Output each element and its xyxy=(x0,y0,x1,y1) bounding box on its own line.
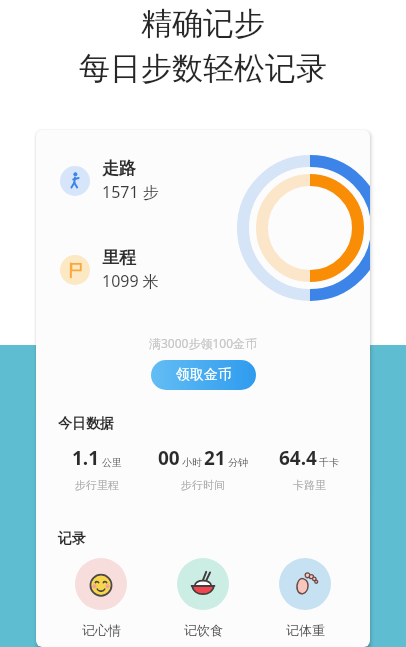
staticText: 1.1 xyxy=(72,445,100,471)
staticText: 今日数据 xyxy=(58,415,114,433)
staticText: 步行里程 xyxy=(75,478,119,492)
staticText: 精确记步 xyxy=(141,4,265,43)
staticText: 记体重 xyxy=(286,622,325,638)
staticText: 1571 步 xyxy=(102,181,159,203)
button[interactable]: 领取金币 xyxy=(151,360,256,390)
staticText: 公里 xyxy=(102,456,122,469)
staticText: 卡路里 xyxy=(293,478,326,492)
staticText: 步行时间 xyxy=(181,478,225,492)
staticText: 记录 xyxy=(58,530,86,548)
staticText: 每日步数轻松记录 xyxy=(79,49,327,88)
other: 记心情 xyxy=(75,558,127,610)
staticText: 领取金币 xyxy=(176,366,232,384)
staticText: 1099 米 xyxy=(102,270,159,292)
staticText: 小时 xyxy=(182,456,202,469)
other: 记体重 xyxy=(279,558,331,610)
staticText: 21 xyxy=(204,445,226,471)
staticText: 64.4 xyxy=(279,445,317,471)
staticText: 分钟 xyxy=(228,456,248,469)
button[interactable]: 记饮食 xyxy=(152,558,254,638)
other: 记饮食 xyxy=(177,558,229,610)
staticText: 里程 xyxy=(102,247,136,268)
staticText: 00 xyxy=(158,445,180,471)
staticText: 走路 xyxy=(102,158,136,179)
staticText: 满3000步领100金币 xyxy=(149,335,258,351)
button[interactable]: 记体重 xyxy=(254,558,356,638)
staticText: 记心情 xyxy=(82,622,121,638)
staticText: 记饮食 xyxy=(184,622,223,638)
button[interactable]: 记心情 xyxy=(50,558,152,638)
staticText: 千卡 xyxy=(319,456,339,469)
